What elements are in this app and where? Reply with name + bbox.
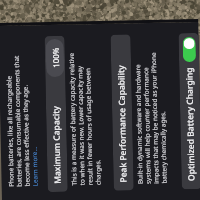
button[interactable]: Maximum Capacity — [44, 36, 68, 192]
staticText: 100% — [50, 47, 61, 68]
staticText: This is a measure of battery capacity re… — [67, 52, 103, 186]
button[interactable]: Optimized Battery Charging — [178, 33, 200, 189]
button[interactable]: Optimized Battery Charging toggle — [182, 37, 196, 62]
staticText: Optimized Battery Charging — [183, 67, 198, 181]
staticText: Built-in dynamic software and hardware s… — [133, 52, 169, 184]
staticText: Peak Performance Capability — [115, 64, 130, 183]
staticText: Maximum Capacity — [50, 106, 64, 184]
button[interactable]: Peak Performance Capability — [110, 34, 134, 191]
staticText: Phone batteries, like all rechargeable b… — [4, 54, 40, 187]
